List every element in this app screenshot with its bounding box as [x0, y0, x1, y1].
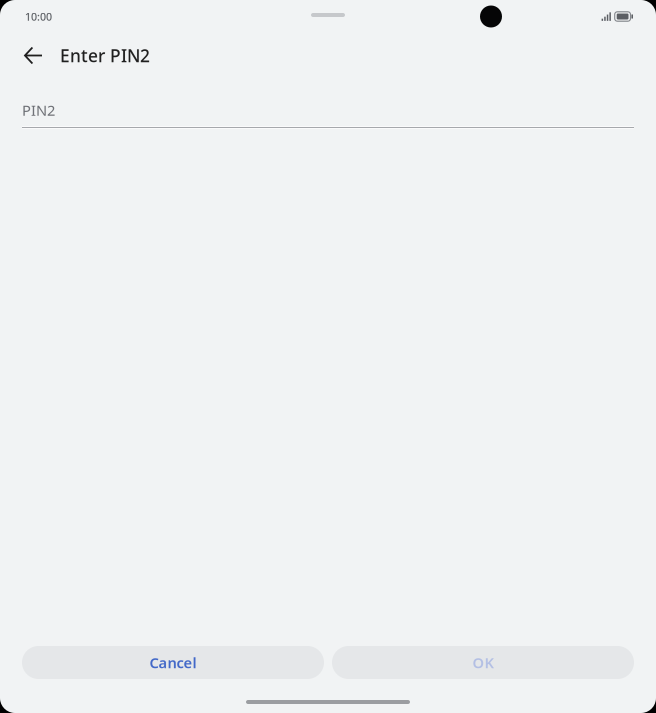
button[interactable]: Back	[0, 37, 60, 73]
button[interactable]: Cancel	[22, 646, 324, 679]
staticText: OK	[472, 653, 493, 672]
staticText: Cancel	[149, 653, 196, 672]
staticText: 10:00	[25, 9, 52, 24]
button[interactable]: PIN2	[0, 78, 656, 129]
staticText: PIN2	[22, 100, 55, 120]
staticText: Enter PIN2	[60, 44, 150, 67]
button[interactable]: OK	[332, 646, 634, 679]
